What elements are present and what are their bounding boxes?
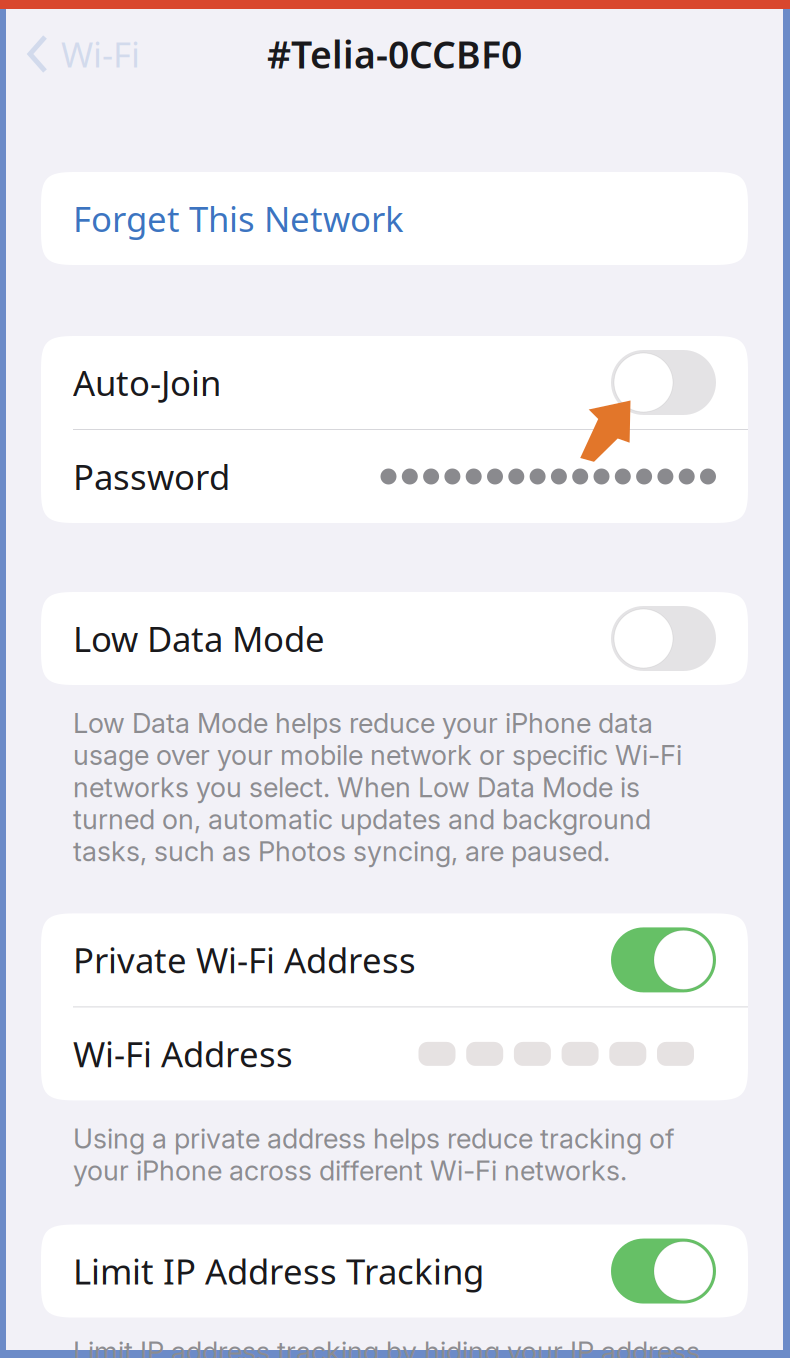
button[interactable]: Low Data Mode, off	[611, 606, 716, 671]
staticText: Limit IP Address Tracking	[73, 1248, 484, 1294]
staticText: #Telia-0CCBF0	[267, 29, 522, 79]
button[interactable]: Back to Wi-Fi	[6, 17, 140, 91]
staticText: Password	[73, 453, 230, 499]
button[interactable]: Auto-Join, off	[611, 350, 716, 415]
staticText: Wi-Fi Address	[73, 1031, 293, 1077]
button[interactable]: Forget This Network	[41, 172, 748, 265]
staticText: Low Data Mode	[73, 615, 325, 661]
staticText: Low Data Mode helps reduce your iPhone d…	[73, 707, 682, 867]
button[interactable]: Limit IP Address Tracking, on	[611, 1239, 716, 1304]
staticText: Wi-Fi	[61, 31, 140, 77]
staticText: Forget This Network	[73, 195, 404, 241]
staticText: Using a private address helps reduce tra…	[73, 1122, 674, 1187]
staticText: Limit IP address tracking by hiding your…	[73, 1336, 700, 1358]
button[interactable]: Private Wi-Fi Address, on	[611, 927, 716, 992]
button[interactable]: Password	[41, 430, 748, 523]
staticText: Auto-Join	[73, 359, 221, 405]
staticText: Private Wi-Fi Address	[73, 937, 416, 983]
button[interactable]: Wi-Fi Address	[41, 1007, 748, 1100]
